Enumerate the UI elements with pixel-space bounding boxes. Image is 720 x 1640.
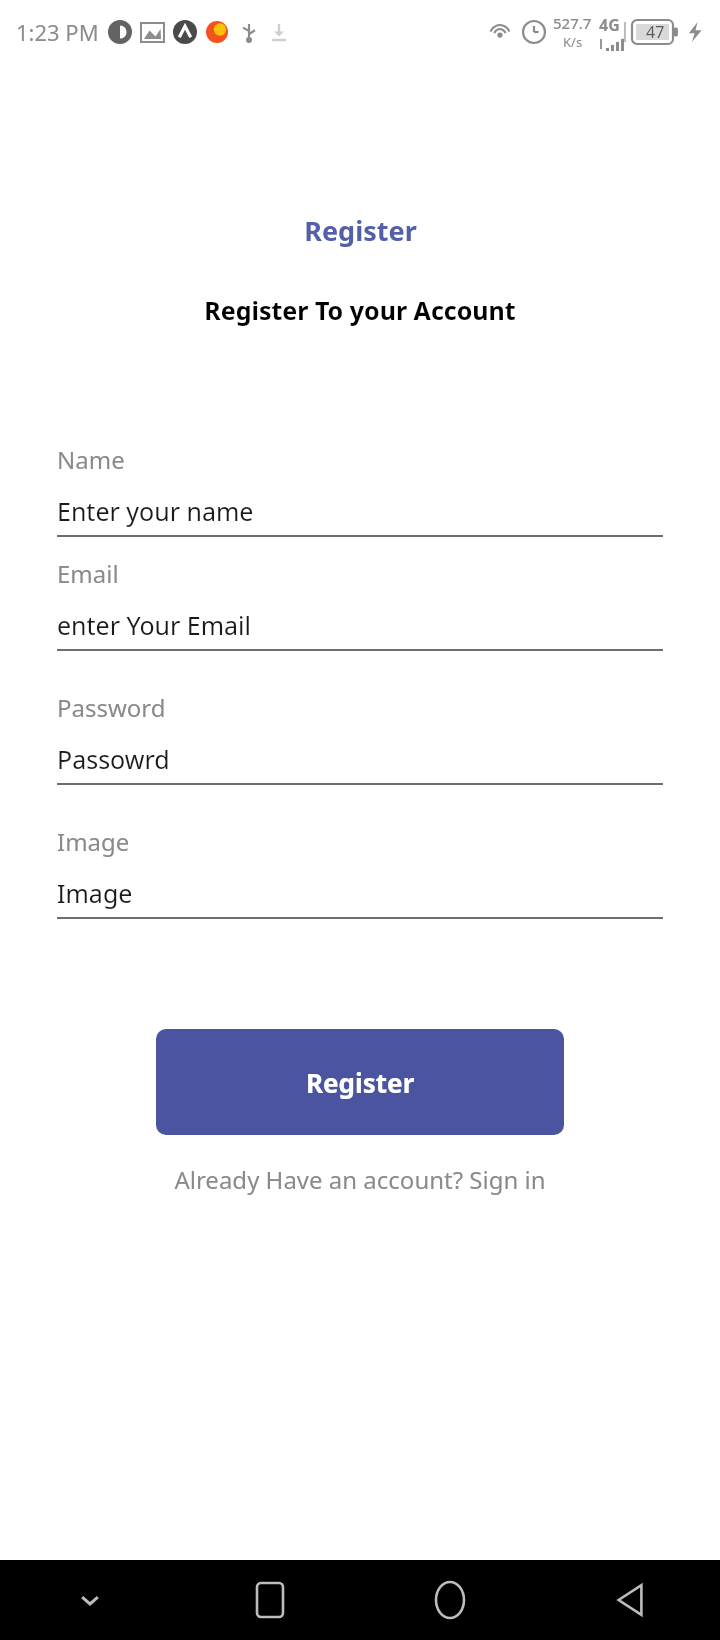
- staticText: Image: [57, 825, 130, 858]
- staticText: Already Have an account? Sign in: [174, 1163, 546, 1196]
- staticText: Image: [57, 876, 133, 910]
- staticText: Enter your name: [57, 494, 254, 528]
- button[interactable]: Back: [540, 1560, 720, 1640]
- button[interactable]: Register: [156, 1029, 564, 1135]
- staticText: 527.7: [553, 13, 592, 33]
- button[interactable]: Password: [57, 691, 663, 785]
- button[interactable]: Already Have an account? Sign in: [166, 1157, 554, 1202]
- staticText: enter Your Email: [57, 608, 252, 642]
- staticText: 47: [646, 21, 665, 43]
- button[interactable]: Email: [57, 557, 663, 651]
- staticText: Passowrd: [57, 742, 170, 776]
- button[interactable]: Home: [360, 1560, 540, 1640]
- button[interactable]: Image: [57, 825, 663, 919]
- button[interactable]: Recent apps: [180, 1560, 360, 1640]
- staticText: 4G: [599, 14, 620, 36]
- staticText: Password: [57, 691, 166, 724]
- button[interactable]: Name: [57, 443, 663, 537]
- staticText: Register: [306, 1065, 415, 1100]
- staticText: Register: [304, 212, 417, 249]
- button[interactable]: Hide keyboard: [0, 1560, 180, 1640]
- staticText: 1:23 PM: [16, 17, 99, 47]
- staticText: Name: [57, 443, 125, 476]
- staticText: Email: [57, 557, 119, 590]
- staticText: K/s: [563, 33, 583, 51]
- staticText: Register To your Account: [204, 293, 516, 327]
